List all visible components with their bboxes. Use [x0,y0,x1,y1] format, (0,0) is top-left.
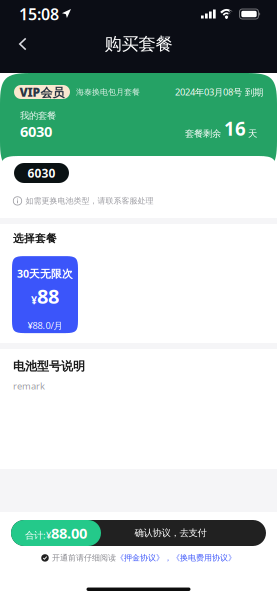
staticText: ¥88.0/月 [27,319,62,332]
staticText: 6030 [20,121,52,141]
staticText: 6030 [27,165,55,181]
staticText: remark [13,380,45,392]
staticText: 16 [224,116,246,141]
staticText: 购买套餐 [104,33,172,55]
staticText: ¥ [46,529,51,541]
staticText: ¥ [31,293,37,307]
staticText: 我的套餐 [20,110,56,121]
staticText: VIP会员 [19,84,64,100]
button[interactable]: 30天无限次 [12,256,78,333]
staticText: 15:08 [19,3,59,25]
staticText: 电池型号说明 [13,359,85,374]
staticText: 选择套餐 [13,232,57,245]
button[interactable]: 确认协议，去支付 [11,520,266,546]
staticText: 88.00 [51,523,87,543]
staticText: 合计: [25,529,46,541]
staticText: 海泰换电包月套餐 [76,87,140,97]
staticText: 如需更换电池类型，请联系客服处理 [25,196,153,206]
staticText: 确认协议，去支付 [134,527,206,539]
staticText: 套餐剩余 [185,128,221,139]
staticText: 2024年03月08号 到期 [175,86,263,98]
staticText: 天 [248,128,257,139]
staticText: 开通前请仔细阅读 [52,553,116,563]
button[interactable]: Back [6,28,40,60]
staticText: 30天无限次 [17,266,73,281]
staticText: 88 [37,283,59,309]
staticText: 《押金协议》，《换电费用协议》 [116,553,236,563]
